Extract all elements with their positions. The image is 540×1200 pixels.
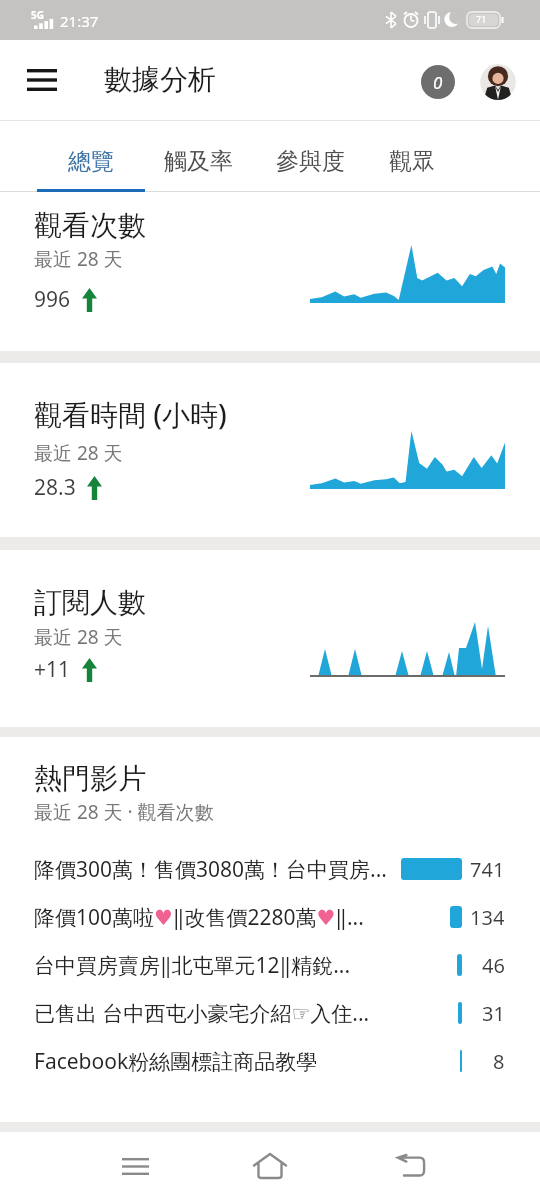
button[interactable]: 參與度 [251, 121, 369, 192]
staticText: 996 [34, 285, 71, 314]
staticText: 熱門影片 [34, 761, 146, 796]
button[interactable]: 訂閱人數 [0, 550, 540, 727]
button[interactable]: 已售出 台中西屯小豪宅介紹☞入住... [34, 989, 505, 1037]
staticText: 數據分析 [104, 62, 216, 97]
staticText: 台中買房賣房‖北屯單元12‖精銳... [34, 951, 396, 980]
button[interactable]: 觀看時間 (小時) [0, 363, 540, 537]
staticText: 134 [470, 904, 505, 931]
staticText: 5G [31, 8, 44, 22]
button[interactable] [382, 1138, 438, 1194]
staticText: 參與度 [276, 147, 345, 176]
staticText: 觀看時間 (小時) [34, 395, 227, 433]
staticText: Facebook粉絲團標註商品教學 [34, 1047, 396, 1076]
staticText: 觀眾 [389, 147, 435, 176]
button[interactable]: 觀看次數 [0, 192, 540, 351]
button[interactable]: 觸及率 [145, 121, 251, 192]
staticText: 觀看次數 [34, 208, 146, 243]
button[interactable]: 台中買房賣房‖北屯單元12‖精銳... [34, 941, 505, 989]
staticText: +11 [34, 655, 71, 684]
staticText: 8 [493, 1048, 505, 1075]
staticText: 最近 28 天 [34, 246, 123, 272]
staticText: 71 [476, 13, 487, 25]
staticText: 觸及率 [164, 147, 233, 176]
button[interactable]: 0 [421, 65, 455, 99]
button[interactable]: Facebook粉絲團標註商品教學 [34, 1037, 505, 1085]
staticText: 最近 28 天 [34, 624, 123, 650]
staticText: 最近 28 天 · 觀看次數 [34, 799, 214, 825]
button[interactable] [107, 1138, 163, 1194]
button[interactable]: 降價300萬！售價3080萬！台中買房... [34, 845, 505, 893]
button[interactable] [242, 1138, 298, 1194]
button[interactable] [480, 64, 516, 100]
staticText: 21:37 [60, 11, 99, 31]
button[interactable]: 降價100萬啦♥‖改售價2280萬♥‖... [34, 893, 505, 941]
staticText: 最近 28 天 [34, 440, 123, 466]
staticText: 降價300萬！售價3080萬！台中買房... [34, 855, 396, 884]
staticText: 741 [470, 856, 505, 883]
staticText: 31 [482, 1000, 505, 1027]
staticText: 降價100萬啦♥‖改售價2280萬♥‖... [34, 903, 396, 932]
staticText: 訂閱人數 [34, 585, 146, 620]
staticText: 總覽 [68, 147, 114, 176]
staticText: 0 [433, 71, 443, 94]
staticText: 46 [482, 952, 505, 979]
staticText: 28.3 [34, 473, 76, 502]
button[interactable]: 觀眾 [369, 121, 455, 192]
button[interactable] [27, 69, 57, 91]
button[interactable]: 總覽 [37, 121, 145, 192]
staticText: 已售出 台中西屯小豪宅介紹☞入住... [34, 999, 396, 1028]
